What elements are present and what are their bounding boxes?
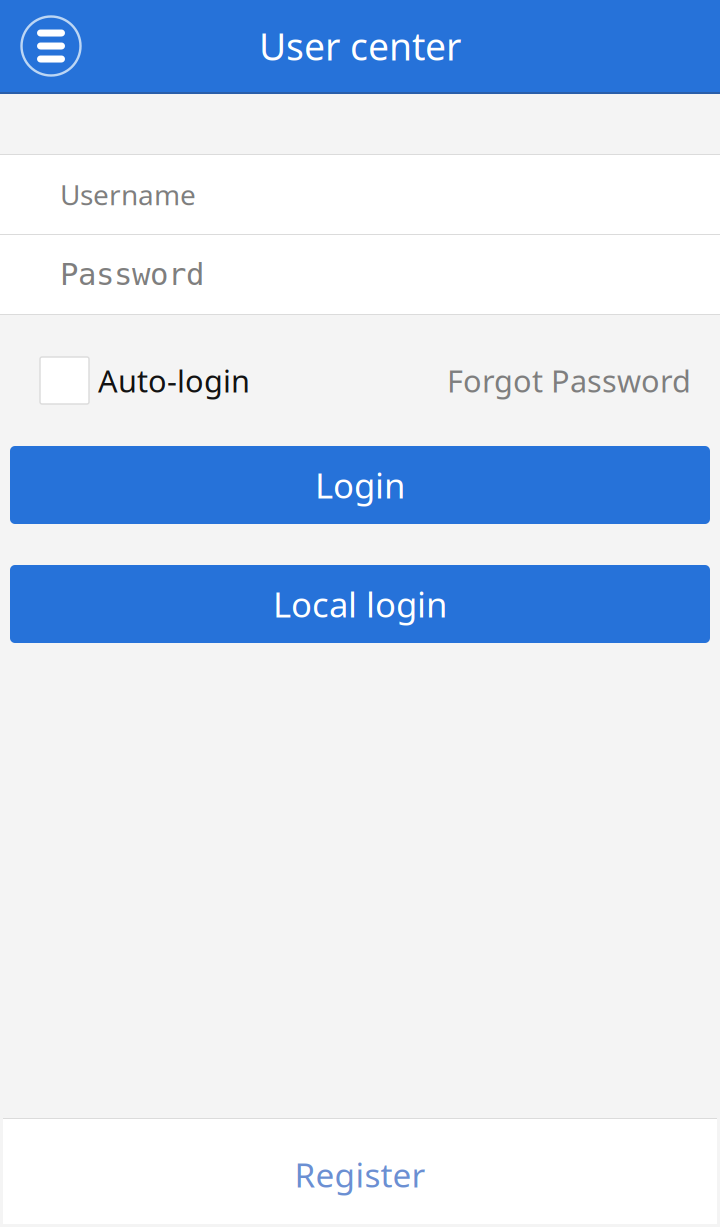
- staticText: Password: [60, 257, 204, 292]
- staticText: User center: [259, 21, 461, 71]
- staticText: Auto-login: [98, 360, 250, 401]
- button[interactable]: Auto-login: [40, 315, 250, 446]
- staticText: Register: [294, 1152, 425, 1197]
- button[interactable]: Local login: [10, 565, 710, 643]
- staticText: Local login: [273, 581, 447, 627]
- button[interactable]: Menu: [0, 0, 82, 92]
- button[interactable]: Username: [0, 155, 720, 234]
- button[interactable]: Register: [3, 1118, 717, 1224]
- staticText: Forgot Password: [447, 360, 691, 401]
- button[interactable]: Forgot Password: [447, 315, 691, 446]
- staticText: Username: [60, 176, 196, 213]
- button[interactable]: Password: [0, 235, 720, 314]
- button[interactable]: Login: [10, 446, 710, 524]
- staticText: Login: [315, 462, 405, 508]
